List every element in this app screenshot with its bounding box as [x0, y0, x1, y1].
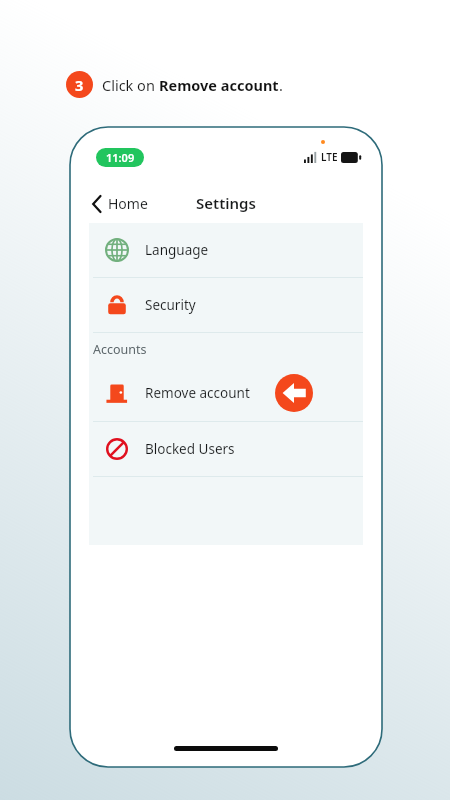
staticText: Blocked Users — [145, 440, 235, 458]
staticText: 3 — [75, 75, 84, 95]
staticText: Click on — [102, 75, 159, 95]
staticText: 11:09 — [106, 150, 135, 165]
staticText: LTE — [321, 150, 338, 164]
staticText: Security — [145, 296, 196, 314]
button[interactable]: Language — [89, 223, 363, 277]
staticText: Language — [145, 241, 209, 259]
staticText: Accounts — [93, 341, 147, 358]
staticText: Remove account — [159, 75, 279, 95]
button[interactable]: Blocked Users — [89, 422, 363, 476]
button[interactable]: Security — [89, 278, 363, 332]
staticText: Settings — [196, 193, 256, 213]
other: Cursor pointing at Remove account — [275, 374, 313, 412]
staticText: Remove account — [145, 384, 250, 402]
staticText: Home — [108, 194, 148, 213]
staticText: . — [279, 75, 283, 95]
button[interactable]: Remove account — [89, 365, 363, 421]
button[interactable]: Home — [88, 189, 152, 218]
